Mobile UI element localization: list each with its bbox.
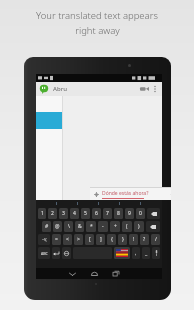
button[interactable] [46, 200, 67, 207]
staticText: 8 [117, 210, 120, 217]
staticText: right away [75, 24, 120, 37]
staticText: 2 [51, 210, 54, 217]
staticText: 5 [84, 210, 87, 217]
button[interactable]: / [151, 234, 160, 245]
button[interactable]: Video call [138, 82, 150, 96]
button[interactable]: ] [96, 234, 105, 245]
staticText: 1 [41, 210, 44, 217]
button[interactable]: < [63, 234, 72, 245]
staticText: & [78, 223, 82, 230]
staticText: # [45, 223, 49, 230]
button[interactable]: Hangouts [39, 84, 49, 94]
button[interactable]: 3 [59, 208, 68, 219]
button[interactable]: + [110, 221, 120, 232]
staticText: ! [133, 236, 135, 243]
staticText: } [122, 236, 124, 243]
button[interactable]: > [74, 234, 83, 245]
button[interactable]: 4 [70, 208, 79, 219]
button[interactable]: Emoji [169, 190, 171, 199]
button[interactable] [147, 208, 160, 219]
button[interactable]: Recent apps [105, 268, 127, 279]
staticText: 4 [73, 210, 76, 217]
staticText: ~\{ [42, 237, 47, 242]
button[interactable]: } [118, 234, 127, 245]
button[interactable] [130, 200, 151, 207]
button[interactable]: More options [150, 82, 160, 96]
button[interactable]: @ [53, 221, 62, 232]
button[interactable]: [ [85, 234, 94, 245]
staticText: 9 [128, 210, 131, 217]
button[interactable]: & [75, 221, 84, 232]
button[interactable]: * [86, 221, 96, 232]
button[interactable]: 7 [103, 208, 112, 219]
staticText: 3 [62, 210, 65, 217]
staticText: ] [100, 236, 102, 243]
button[interactable]: 0 [136, 208, 145, 219]
button[interactable] [52, 247, 60, 259]
staticText: 7 [106, 210, 109, 217]
button[interactable]: # [42, 221, 51, 232]
staticText: [ [89, 236, 91, 243]
staticText: ) [138, 223, 140, 230]
staticText: < [66, 236, 69, 243]
button[interactable] [152, 247, 160, 259]
staticText: , [135, 250, 137, 257]
staticText: \ [68, 223, 70, 230]
staticText: ( [126, 223, 128, 230]
button[interactable]: Insert sticker [92, 190, 100, 198]
button[interactable]: 8 [114, 208, 123, 219]
button[interactable]: ! [129, 234, 138, 245]
staticText: Dónde estás ahora? [102, 190, 149, 197]
button[interactable]: = [52, 234, 61, 245]
staticText: > [77, 236, 80, 243]
button[interactable]: 9 [125, 208, 134, 219]
staticText: 6 [95, 210, 98, 217]
staticText: _ [145, 250, 148, 257]
staticText: * [90, 223, 93, 230]
button[interactable]: , [132, 247, 140, 259]
button[interactable] [67, 200, 88, 207]
button[interactable] [146, 221, 160, 232]
staticText: 0 [139, 210, 142, 217]
staticText: ABC [41, 251, 48, 256]
staticText: = [55, 236, 58, 243]
button[interactable]: 5 [81, 208, 90, 219]
staticText: - [102, 223, 104, 230]
staticText: Your translated text appears [36, 9, 158, 22]
button[interactable]: - [98, 221, 108, 232]
button[interactable] [109, 200, 130, 207]
button[interactable]: ABC [38, 247, 50, 259]
button[interactable]: 2 [48, 208, 57, 219]
staticText: @ [55, 223, 60, 230]
button[interactable]: ) [134, 221, 144, 232]
button[interactable] [114, 247, 130, 259]
staticText: / [155, 236, 157, 243]
staticText: { [111, 236, 113, 243]
button[interactable]: \ [64, 221, 73, 232]
button[interactable] [62, 247, 71, 259]
staticText: ? [143, 236, 146, 243]
button[interactable]: _ [142, 247, 150, 259]
button[interactable]: { [107, 234, 116, 245]
button[interactable]: 6 [92, 208, 101, 219]
button[interactable]: ~\{ [38, 234, 50, 245]
button[interactable] [88, 200, 109, 207]
button[interactable]: ? [140, 234, 149, 245]
button[interactable]: ( [122, 221, 132, 232]
button[interactable]: Hide keyboard [61, 268, 83, 279]
staticText: Abru [53, 85, 67, 93]
staticText: + [114, 223, 117, 230]
button[interactable]: 1 [38, 208, 46, 219]
button[interactable]: Home [83, 268, 105, 279]
